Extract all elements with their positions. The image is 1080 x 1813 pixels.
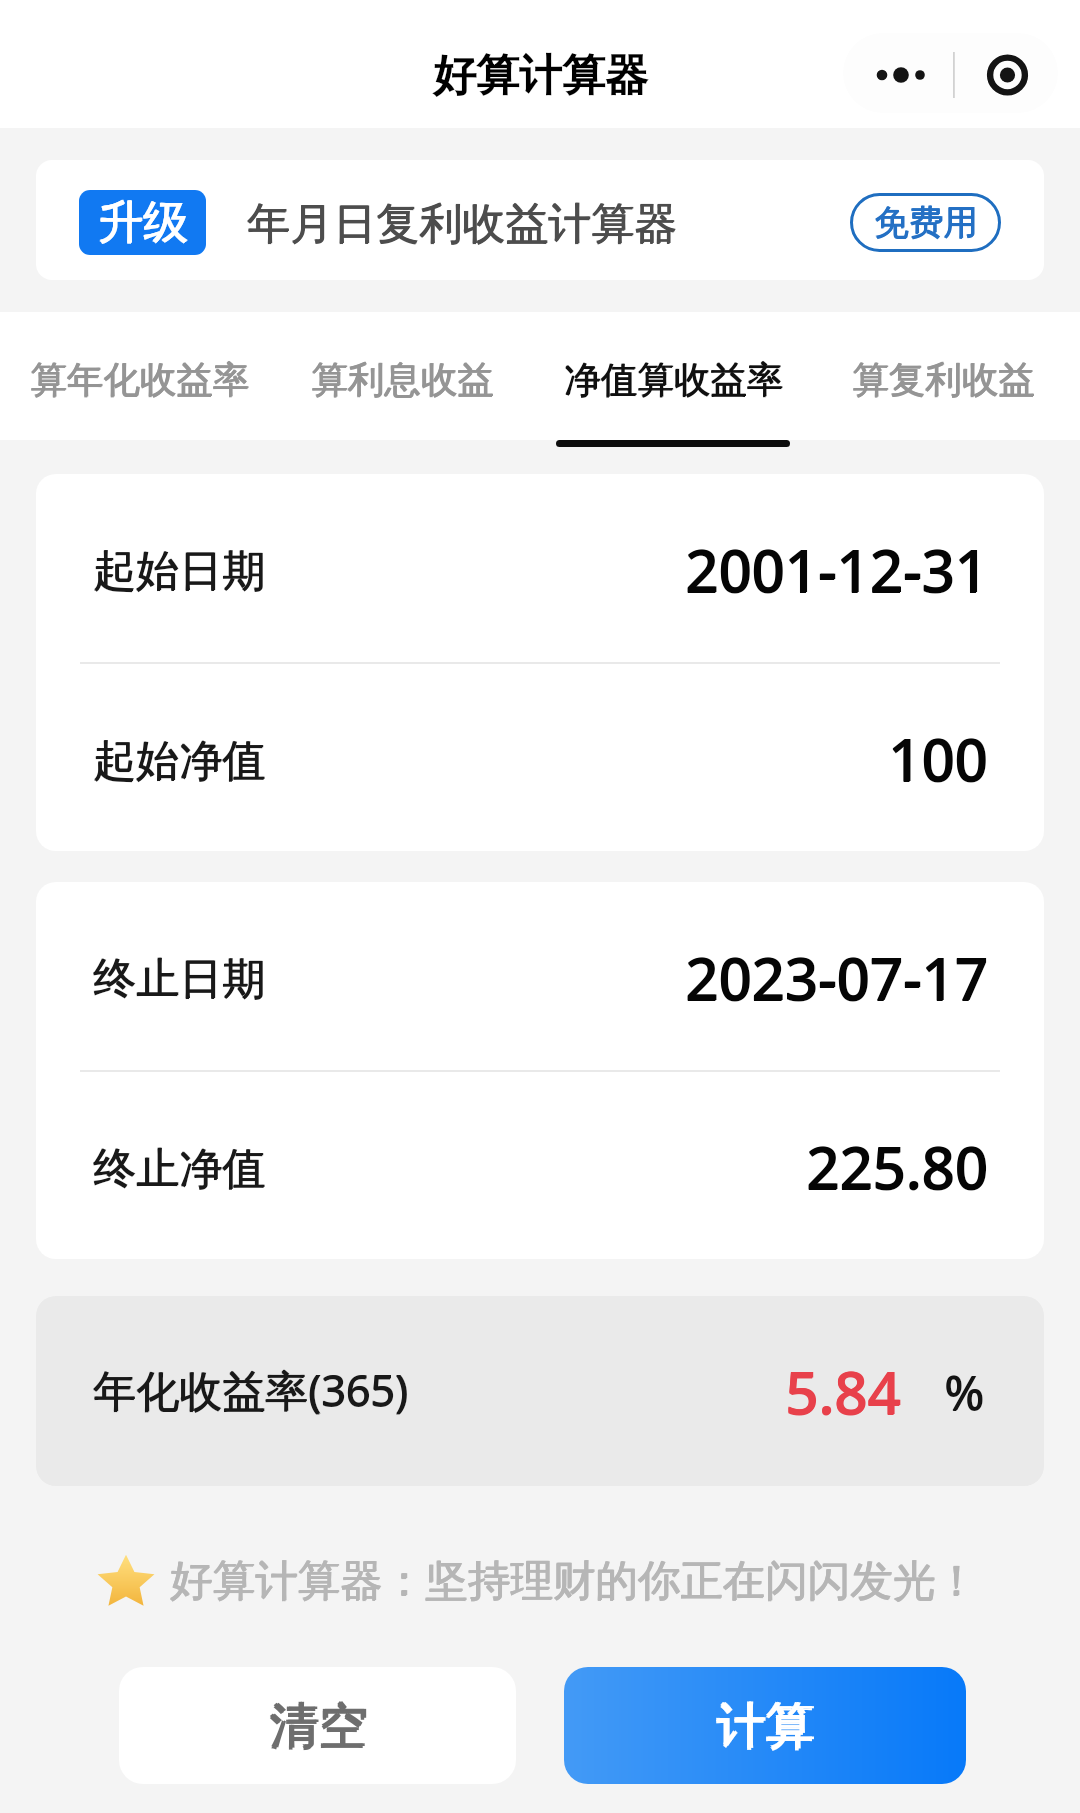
staticText: 起始日期 <box>93 544 265 598</box>
staticText: 升级 <box>98 194 188 251</box>
staticText: 计算 <box>716 1697 814 1759</box>
staticText: 清空 <box>271 1695 369 1757</box>
staticText: 2023-07-17 <box>685 938 988 1017</box>
staticText: 5.84 <box>786 1352 902 1431</box>
staticText: 5.84 <box>785 1352 901 1431</box>
staticText: 起始净值 <box>94 734 266 788</box>
staticText: 清空 <box>269 1697 367 1759</box>
staticText: 计算 <box>716 1695 814 1757</box>
button[interactable]: 算复利收益 <box>852 312 1035 447</box>
staticText: 终止日期 <box>93 952 265 1006</box>
button[interactable]: 算利息收益 <box>311 312 494 447</box>
staticText: 算复利收益 <box>852 357 1035 403</box>
staticText: 算年化收益率 <box>30 357 249 403</box>
button[interactable]: 净值算收益率 <box>556 312 790 447</box>
staticText: 净值算收益率 <box>564 357 783 403</box>
staticText: 年化收益率(365) <box>93 1360 408 1419</box>
button[interactable]: 起始净值 <box>36 664 1044 851</box>
staticText: 2001-12-31 <box>685 530 988 609</box>
staticText: 年月日复利收益计算器 <box>247 198 677 252</box>
staticText: 起始净值 <box>93 735 265 789</box>
staticText: 算年化收益率 <box>30 358 249 404</box>
staticText: 净值算收益率 <box>564 358 783 404</box>
staticText: 计算 <box>718 1695 816 1757</box>
staticText: 年月日复利收益计算器 <box>247 197 677 251</box>
staticText: 终止净值 <box>93 1142 265 1196</box>
staticText: % <box>945 1359 985 1424</box>
staticText: % <box>944 1359 984 1424</box>
staticText: 免费用 <box>874 201 978 244</box>
staticText: 100 <box>889 719 989 798</box>
staticText: 2023-07-17 <box>685 939 988 1018</box>
staticText: 起始日期 <box>94 544 266 598</box>
staticText: 净值算收益率 <box>565 357 784 403</box>
staticText: % <box>944 1360 984 1425</box>
staticText: 升级 <box>98 195 188 252</box>
button[interactable]: 免费用 <box>850 193 1001 252</box>
staticText: 2001-12-31 <box>685 531 988 610</box>
staticText: 年化收益率(365) <box>94 1360 409 1419</box>
button[interactable]: 终止净值 <box>36 1072 1044 1259</box>
button[interactable]: 计算 <box>564 1667 966 1784</box>
staticText: 2023-07-17 <box>686 938 989 1017</box>
button[interactable]: More options <box>843 33 953 113</box>
staticText: 100 <box>888 719 988 798</box>
staticText: 算复利收益 <box>852 358 1035 404</box>
staticText: 免费用 <box>874 202 978 245</box>
staticText: 终止净值 <box>93 1143 265 1197</box>
button[interactable]: 算年化收益率 <box>30 312 249 447</box>
staticText: 年月日复利收益计算器 <box>248 197 678 251</box>
staticText: 终止净值 <box>94 1142 266 1196</box>
staticText: 升级 <box>99 194 189 251</box>
staticText: 终止日期 <box>94 952 266 1006</box>
button[interactable]: 清空 <box>119 1667 516 1784</box>
staticText: 起始日期 <box>93 545 265 599</box>
staticText: 算利息收益 <box>311 357 494 403</box>
staticText: 算利息收益 <box>311 358 494 404</box>
staticText: 算复利收益 <box>853 357 1036 403</box>
staticText: 2001-12-31 <box>686 530 989 609</box>
staticText: 终止日期 <box>93 953 265 1007</box>
staticText: 5.84 <box>785 1353 901 1432</box>
staticText: 起始净值 <box>93 734 265 788</box>
staticText: 225.80 <box>806 1127 988 1206</box>
staticText: 好算计算器：坚持理财的你正在闪闪发光！ <box>171 1554 979 1608</box>
staticText: 225.80 <box>806 1128 988 1207</box>
staticText: 好算计算器：坚持理财的你正在闪闪发光！ <box>170 1555 978 1609</box>
staticText: 好算计算器 <box>433 49 648 103</box>
staticText: 好算计算器：坚持理财的你正在闪闪发光！ <box>170 1554 978 1608</box>
staticText: 225.80 <box>807 1127 989 1206</box>
staticText: 免费用 <box>875 201 979 244</box>
staticText: 年化收益率(365) <box>93 1361 408 1420</box>
button[interactable]: 终止日期 <box>36 882 1044 1070</box>
staticText: 清空 <box>269 1695 367 1757</box>
button[interactable]: 升级 <box>36 160 1044 280</box>
button[interactable]: 起始日期 <box>36 474 1044 662</box>
staticText: 100 <box>888 720 988 799</box>
staticText: 算年化收益率 <box>31 357 250 403</box>
staticText: 算利息收益 <box>312 357 495 403</box>
button[interactable]: Close mini program <box>953 33 1058 113</box>
